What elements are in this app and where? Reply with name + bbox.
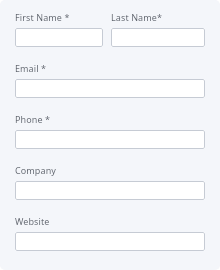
button[interactable]: [15, 181, 205, 200]
button[interactable]: [15, 232, 205, 251]
staticText: Company: [15, 164, 56, 176]
staticText: Website: [15, 215, 50, 227]
staticText: Phone *: [15, 113, 51, 125]
staticText: First Name *: [15, 11, 70, 23]
staticText: Last Name*: [111, 11, 163, 23]
button[interactable]: [15, 28, 103, 47]
button[interactable]: [15, 130, 205, 149]
button[interactable]: [111, 28, 205, 47]
staticText: Email *: [15, 62, 47, 74]
button[interactable]: [15, 79, 205, 98]
